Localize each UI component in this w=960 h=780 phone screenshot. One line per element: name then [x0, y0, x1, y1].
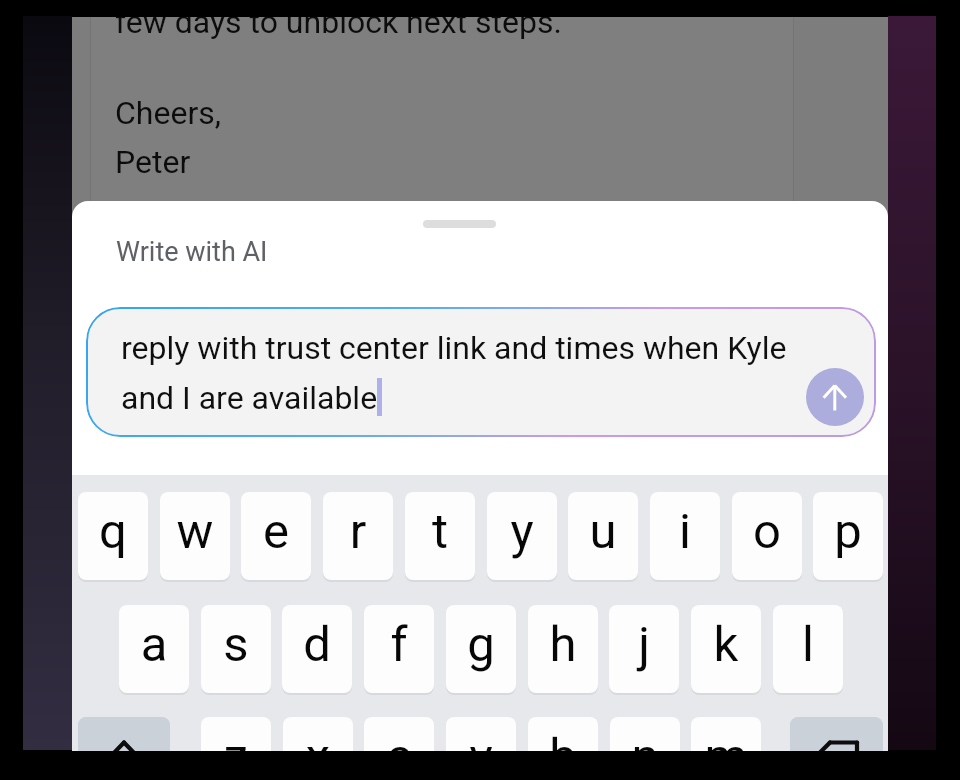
button[interactable]: u: [568, 492, 638, 580]
staticText: a: [119, 616, 189, 673]
staticText: k: [691, 616, 761, 673]
staticText: z: [201, 728, 271, 751]
button[interactable]: q: [78, 492, 148, 580]
button[interactable]: h: [528, 605, 598, 693]
button[interactable]: b: [528, 717, 598, 751]
staticText: r: [323, 503, 393, 560]
staticText: and I are available: [121, 379, 378, 417]
staticText: Write with AI: [116, 236, 268, 268]
button[interactable]: reply with trust center link and times w…: [86, 307, 876, 437]
staticText: h: [528, 616, 598, 673]
button[interactable]: n: [610, 717, 680, 751]
staticText: Peter: [115, 143, 191, 181]
button[interactable]: s: [201, 605, 271, 693]
button[interactable]: j: [609, 605, 679, 693]
staticText: s: [201, 616, 271, 673]
staticText: x: [283, 728, 353, 751]
staticText: m: [691, 728, 761, 751]
button[interactable]: i: [650, 492, 720, 580]
staticText: n: [610, 728, 680, 751]
staticText: f: [364, 616, 434, 673]
button[interactable]: x: [283, 717, 353, 751]
staticText: d: [282, 616, 352, 673]
button[interactable]: Backspace: [790, 717, 883, 751]
staticText: q: [78, 503, 148, 560]
button[interactable]: e: [241, 492, 311, 580]
button[interactable]: y: [487, 492, 557, 580]
button[interactable]: o: [732, 492, 802, 580]
button[interactable]: g: [446, 605, 516, 693]
staticText: j: [609, 616, 679, 673]
staticText: e: [241, 503, 311, 560]
staticText: b: [528, 728, 598, 751]
button[interactable]: z: [201, 717, 271, 751]
staticText: l: [773, 616, 843, 673]
staticText: c: [364, 728, 434, 751]
button[interactable]: v: [446, 717, 516, 751]
button[interactable]: d: [282, 605, 352, 693]
button[interactable]: a: [119, 605, 189, 693]
staticText: y: [487, 503, 557, 560]
button[interactable]: r: [323, 492, 393, 580]
button[interactable]: m: [691, 717, 761, 751]
button[interactable]: t: [405, 492, 475, 580]
staticText: o: [732, 503, 802, 560]
staticText: p: [813, 503, 883, 560]
button[interactable]: p: [813, 492, 883, 580]
button[interactable]: f: [364, 605, 434, 693]
staticText: t: [405, 503, 475, 560]
button[interactable]: l: [773, 605, 843, 693]
staticText: w: [160, 503, 230, 560]
button[interactable]: Send: [806, 368, 864, 426]
button[interactable]: k: [691, 605, 761, 693]
staticText: v: [446, 728, 516, 751]
staticText: u: [568, 503, 638, 560]
staticText: i: [650, 503, 720, 560]
button[interactable]: w: [160, 492, 230, 580]
button[interactable]: c: [364, 717, 434, 751]
staticText: few days to unblock next steps.: [115, 17, 562, 41]
button[interactable]: Shift: [78, 717, 170, 751]
staticText: reply with trust center link and times w…: [121, 329, 787, 367]
staticText: Cheers,: [115, 94, 222, 132]
staticText: g: [446, 616, 516, 673]
